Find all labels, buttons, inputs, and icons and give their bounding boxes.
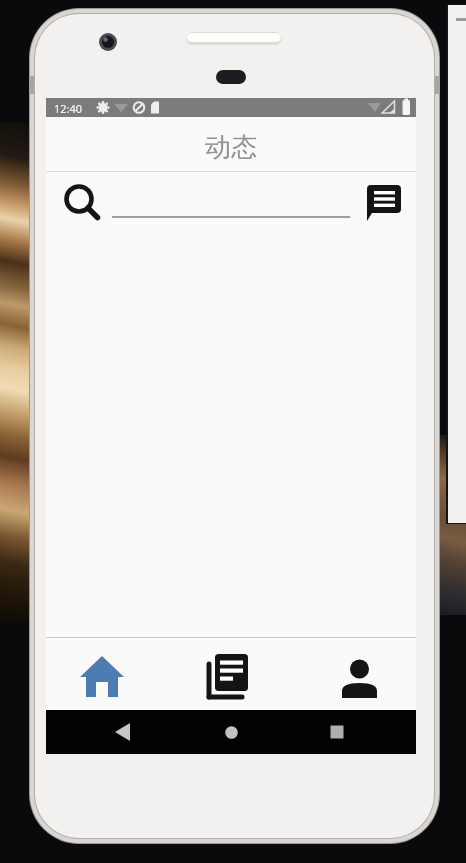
button[interactable] — [103, 712, 143, 752]
button[interactable] — [46, 638, 170, 710]
button[interactable] — [112, 192, 350, 222]
button[interactable] — [317, 712, 357, 752]
button[interactable] — [360, 180, 404, 224]
button[interactable] — [59, 179, 105, 225]
staticText: 动态 — [205, 131, 257, 164]
button[interactable] — [293, 638, 416, 710]
staticText: 12:40 — [54, 101, 83, 116]
button[interactable] — [211, 712, 251, 752]
button[interactable] — [170, 638, 293, 710]
